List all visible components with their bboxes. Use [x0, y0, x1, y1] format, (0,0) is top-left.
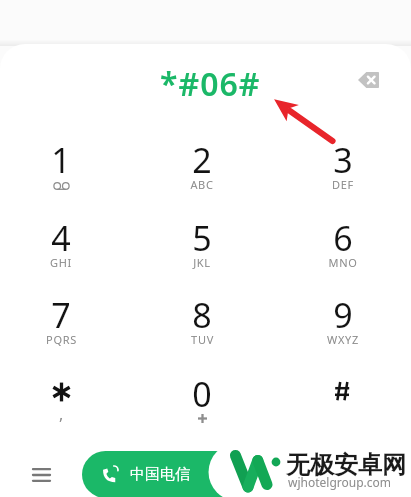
staticText: JKL — [193, 255, 211, 270]
staticText: 中国电信 — [130, 465, 190, 484]
staticText: 8 — [192, 292, 212, 338]
button[interactable]: 0 — [155, 359, 249, 431]
button[interactable]: 中国电信 — [82, 451, 257, 497]
staticText: 9 — [333, 292, 353, 338]
button[interactable]: 2 — [155, 125, 249, 197]
button[interactable]: Menu — [19, 453, 63, 497]
button[interactable]: 8 — [155, 280, 249, 352]
staticText: GHI — [50, 255, 72, 270]
button[interactable]: 9 — [296, 280, 390, 352]
button[interactable]: 4 — [14, 203, 108, 275]
staticText: 0 — [192, 371, 212, 417]
button[interactable]: *#06# — [160, 62, 261, 106]
staticText: WXYZ — [327, 332, 359, 347]
button[interactable]: 6 — [296, 203, 390, 275]
button[interactable] — [296, 359, 390, 431]
staticText: wjhotelgroup.com — [288, 474, 392, 490]
staticText: 4 — [51, 215, 71, 261]
staticText: PQRS — [46, 332, 77, 347]
staticText: DEF — [332, 177, 354, 192]
button[interactable]: 5 — [155, 203, 249, 275]
staticText: 1 — [51, 137, 71, 183]
staticText: 3 — [333, 137, 353, 183]
button[interactable]: Delete — [346, 58, 390, 102]
staticText: , — [59, 403, 64, 425]
staticText: TUV — [191, 332, 214, 347]
staticText: 无极安卓网 — [286, 450, 406, 480]
button[interactable]: 1 — [14, 125, 108, 197]
button[interactable]: 7 — [14, 280, 108, 352]
staticText: 2 — [192, 137, 212, 183]
staticText: *#06# — [160, 62, 261, 106]
button[interactable]: , — [14, 359, 108, 431]
button[interactable]: 3 — [296, 125, 390, 197]
staticText: 6 — [333, 215, 353, 261]
staticText: 5 — [192, 215, 212, 261]
staticText: ABC — [190, 177, 214, 192]
staticText: 7 — [51, 292, 71, 338]
staticText: MNO — [328, 255, 358, 270]
